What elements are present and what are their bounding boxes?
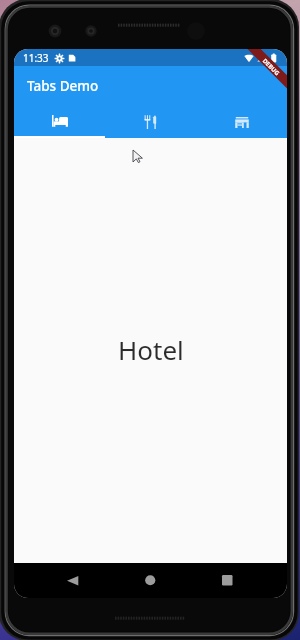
button[interactable]: Home [133, 563, 167, 598]
button[interactable]: Back [56, 563, 90, 598]
staticText: DEBUG [261, 57, 281, 77]
button[interactable]: Restaurant tab [105, 106, 196, 138]
button[interactable]: Hotel tab [14, 106, 105, 138]
staticText: Tabs Demo [27, 77, 99, 95]
button[interactable]: Store tab [196, 106, 287, 138]
staticText: 11:33 [23, 51, 49, 65]
staticText: Hotel [118, 332, 184, 367]
button[interactable]: Recent apps [210, 563, 244, 598]
